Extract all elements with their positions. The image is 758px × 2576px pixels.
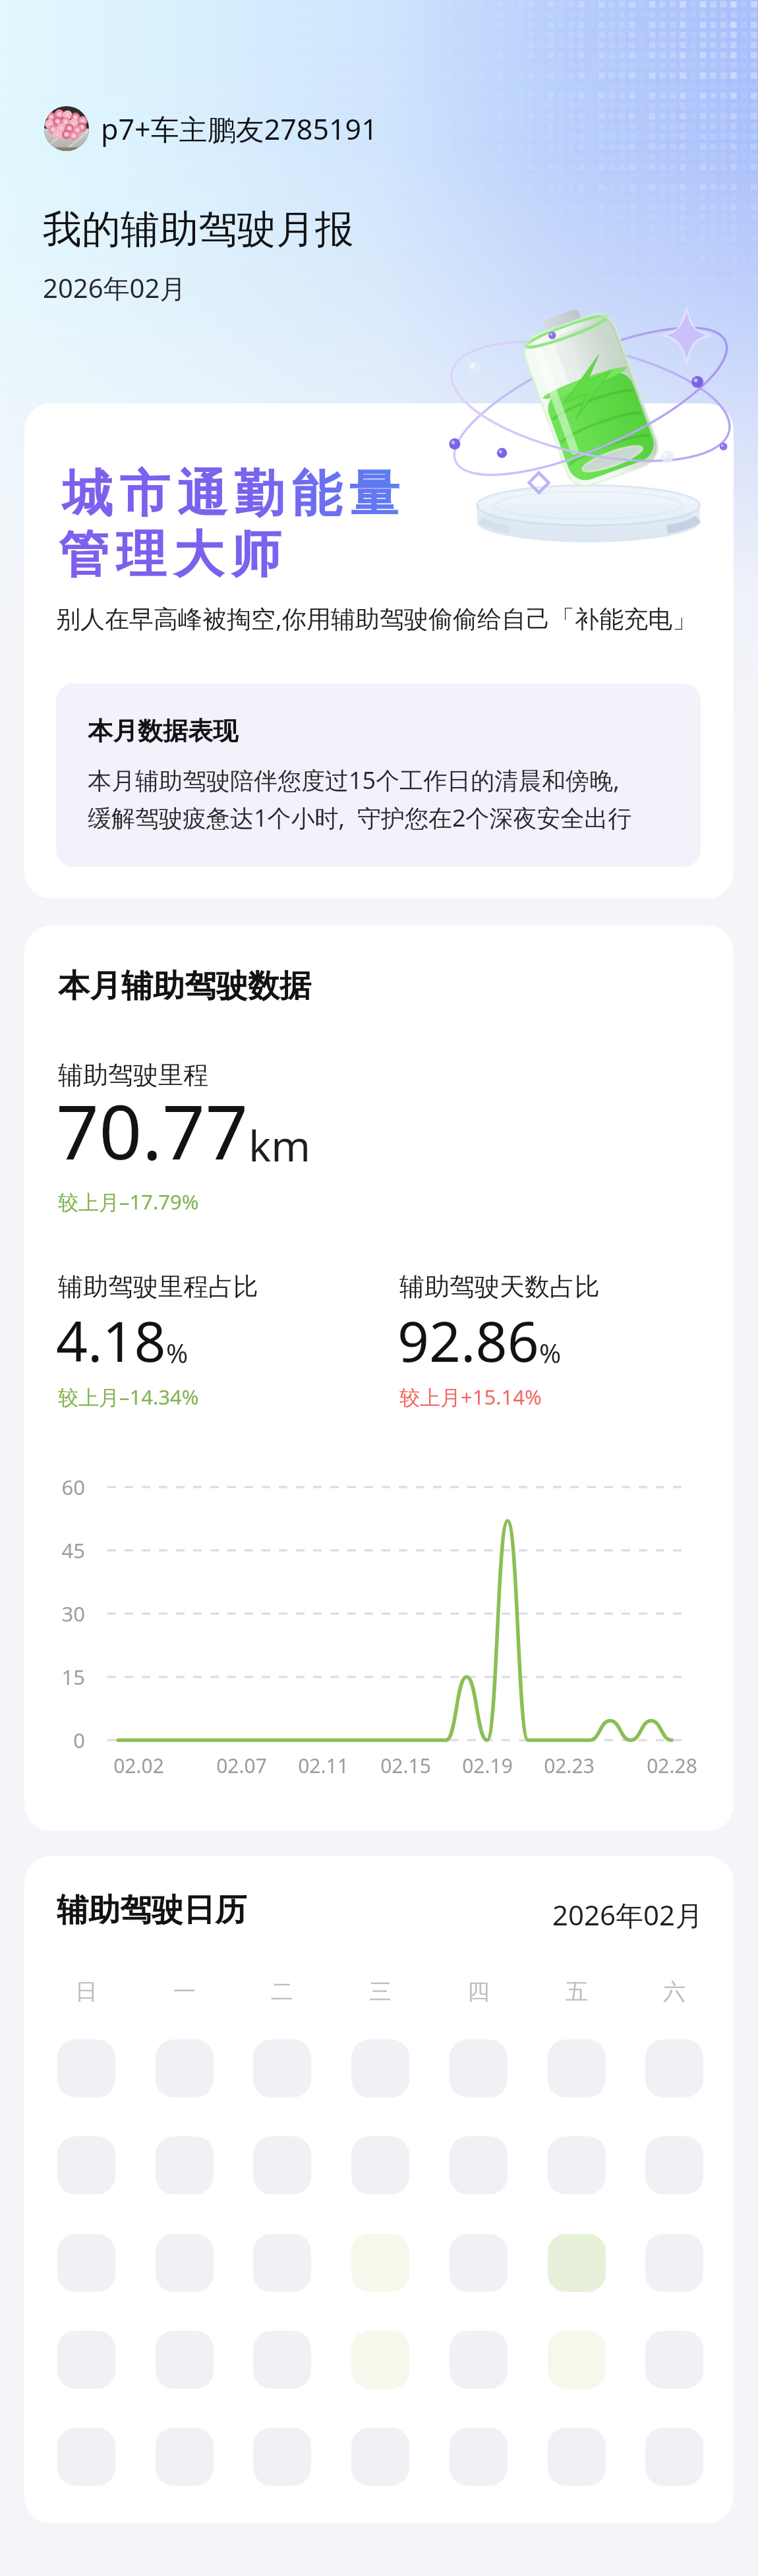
button[interactable] — [645, 2234, 703, 2292]
staticText: 我的辅助驾驶月报 — [43, 205, 354, 254]
button[interactable] — [351, 2331, 409, 2389]
staticText: 60 — [61, 1473, 85, 1501]
button[interactable] — [645, 2039, 703, 2097]
staticText: 45 — [61, 1537, 85, 1564]
button[interactable] — [57, 2039, 115, 2097]
button[interactable] — [450, 2331, 508, 2389]
button[interactable] — [253, 2234, 311, 2292]
button[interactable] — [548, 2428, 606, 2486]
button[interactable]: p7+车主鹏友2785191 — [44, 106, 378, 151]
button[interactable] — [645, 2428, 703, 2486]
staticText: 02.02 — [113, 1752, 164, 1779]
button[interactable] — [351, 2039, 409, 2097]
button[interactable] — [645, 2136, 703, 2194]
button[interactable] — [450, 2136, 508, 2194]
button[interactable] — [450, 2428, 508, 2486]
button[interactable] — [156, 2428, 214, 2486]
button[interactable] — [548, 2234, 606, 2292]
staticText: p7+车主鹏友2785191 — [101, 109, 378, 148]
staticText: % — [166, 1335, 189, 1370]
staticText: 较上月–17.79% — [58, 1188, 199, 1215]
button[interactable] — [156, 2136, 214, 2194]
button[interactable] — [548, 2039, 606, 2097]
staticText: 2026年02月 — [552, 1896, 703, 1933]
button[interactable] — [645, 2331, 703, 2389]
staticText: 较上月–14.34% — [58, 1383, 199, 1411]
staticText: 辅助驾驶天数占比 — [399, 1271, 600, 1303]
button[interactable] — [57, 2136, 115, 2194]
staticText: 四 — [467, 1977, 490, 2006]
staticText: 五 — [566, 1977, 588, 2006]
staticText: 02.19 — [462, 1752, 513, 1779]
staticText: 0 — [73, 1726, 85, 1754]
button[interactable] — [351, 2428, 409, 2486]
button[interactable] — [156, 2039, 214, 2097]
staticText: 六 — [663, 1977, 685, 2006]
staticText: 2026年02月 — [43, 270, 187, 306]
button[interactable] — [351, 2234, 409, 2292]
button[interactable] — [450, 2039, 508, 2097]
staticText: 一 — [173, 1977, 196, 2006]
button[interactable] — [156, 2331, 214, 2389]
button[interactable] — [57, 2428, 115, 2486]
staticText: 02.23 — [544, 1752, 595, 1779]
button[interactable] — [548, 2136, 606, 2194]
staticText: 02.15 — [380, 1752, 431, 1779]
staticText: 日 — [75, 1977, 98, 2006]
staticText: 30 — [61, 1600, 85, 1627]
staticText: 92.86 — [397, 1303, 539, 1378]
staticText: 本月辅助驾驶陪伴您度过15个工作日的清晨和傍晚, 缓解驾驶疲惫达1个小时, 守护… — [88, 764, 632, 834]
staticText: 本月数据表现 — [88, 715, 238, 747]
staticText: 三 — [369, 1977, 392, 2006]
staticText: 本月辅助驾驶数据 — [58, 966, 311, 1006]
button[interactable] — [57, 2234, 115, 2292]
staticText: 城市通勤能量 管理大师 — [59, 463, 403, 586]
staticText: 15 — [61, 1663, 85, 1691]
staticText: 02.07 — [216, 1752, 267, 1779]
button[interactable] — [156, 2234, 214, 2292]
staticText: 4.18 — [56, 1303, 166, 1378]
button[interactable] — [450, 2234, 508, 2292]
staticText: % — [539, 1335, 562, 1370]
button[interactable] — [253, 2331, 311, 2389]
staticText: km — [248, 1117, 311, 1174]
staticText: 辅助驾驶里程占比 — [58, 1271, 258, 1303]
staticText: 辅助驾驶日历 — [57, 1890, 247, 1930]
staticText: 70.77 — [56, 1079, 248, 1181]
button[interactable] — [548, 2331, 606, 2389]
staticText: 较上月+15.14% — [399, 1383, 542, 1411]
button[interactable] — [253, 2136, 311, 2194]
button[interactable] — [57, 2331, 115, 2389]
staticText: 辅助驾驶里程 — [58, 1059, 208, 1091]
button[interactable] — [253, 2428, 311, 2486]
staticText: 别人在早高峰被掏空,你用辅助驾驶偷偷给自己「补能充电」 — [56, 601, 697, 635]
staticText: 02.28 — [647, 1752, 697, 1779]
button[interactable] — [351, 2136, 409, 2194]
staticText: 02.11 — [298, 1752, 349, 1779]
button[interactable] — [253, 2039, 311, 2097]
staticText: 二 — [271, 1977, 293, 2006]
